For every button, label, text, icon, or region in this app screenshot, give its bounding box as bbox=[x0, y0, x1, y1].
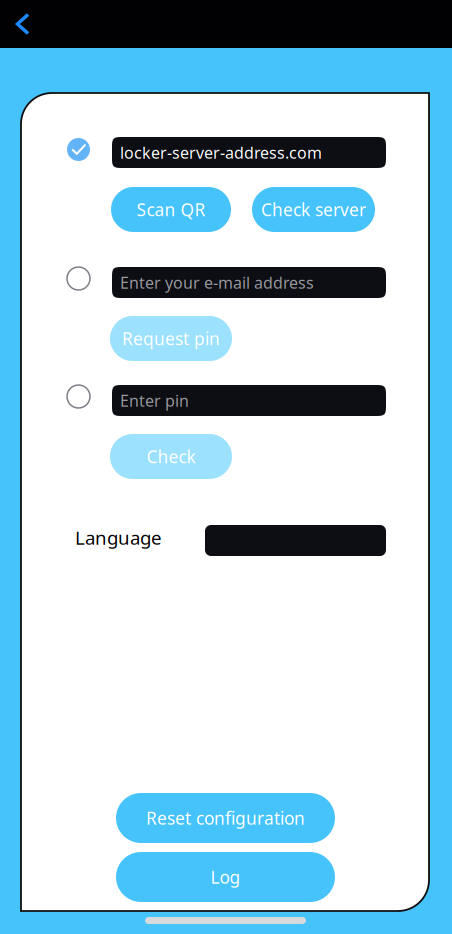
button[interactable]: Reset configuration bbox=[116, 793, 335, 843]
button[interactable]: Request pin bbox=[110, 316, 232, 361]
staticText: Check bbox=[146, 445, 195, 468]
button[interactable]: Use pin bbox=[67, 385, 90, 408]
button[interactable]: Log bbox=[116, 852, 335, 902]
button[interactable]: Check bbox=[110, 434, 232, 479]
staticText: Request pin bbox=[122, 327, 220, 350]
button[interactable]: Back bbox=[8, 11, 38, 37]
staticText: Enter your e-mail address bbox=[120, 272, 314, 293]
button[interactable]: Enter your e-mail address bbox=[112, 267, 386, 298]
staticText: Enter pin bbox=[120, 390, 189, 411]
staticText: Language bbox=[75, 525, 162, 550]
button[interactable]: Scan QR bbox=[111, 187, 231, 232]
button[interactable]: locker-server-address.com bbox=[112, 137, 386, 168]
button[interactable]: Use e-mail address bbox=[67, 267, 90, 290]
staticText: locker-server-address.com bbox=[120, 142, 322, 163]
button[interactable]: Enter pin bbox=[112, 385, 386, 416]
button[interactable]: Language bbox=[205, 525, 386, 556]
button[interactable]: Check server bbox=[252, 187, 375, 232]
staticText: Reset configuration bbox=[146, 806, 305, 829]
staticText: Scan QR bbox=[136, 198, 205, 221]
staticText: Check server bbox=[261, 198, 366, 221]
button[interactable]: Use server address, selected bbox=[67, 138, 90, 161]
staticText: Log bbox=[210, 865, 240, 888]
